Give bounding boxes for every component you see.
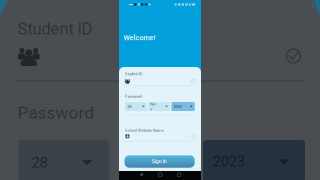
staticText: Nov: [150, 102, 156, 111]
staticText: Sign In: [152, 159, 167, 164]
button[interactable]: 2023: [171, 102, 195, 111]
staticText: Welcome!: [123, 34, 155, 42]
staticText: Student ID: [17, 19, 92, 38]
button[interactable]: Home: [156, 171, 164, 179]
button[interactable]: 28: [125, 102, 147, 111]
button[interactable]: Recents: [175, 171, 183, 179]
staticText: School Website Name: [125, 128, 164, 133]
staticText: 28: [31, 154, 47, 171]
staticText: 2023: [173, 104, 181, 109]
button[interactable]: Back: [137, 171, 145, 179]
staticText: Student ID: [125, 71, 143, 76]
staticText: Password: [124, 94, 141, 99]
staticText: 2023: [213, 153, 245, 170]
button[interactable]: Sign In: [125, 155, 195, 167]
staticText: Password: [17, 103, 94, 123]
button[interactable]: Nov: [148, 102, 170, 111]
staticText: 28: [127, 104, 131, 109]
